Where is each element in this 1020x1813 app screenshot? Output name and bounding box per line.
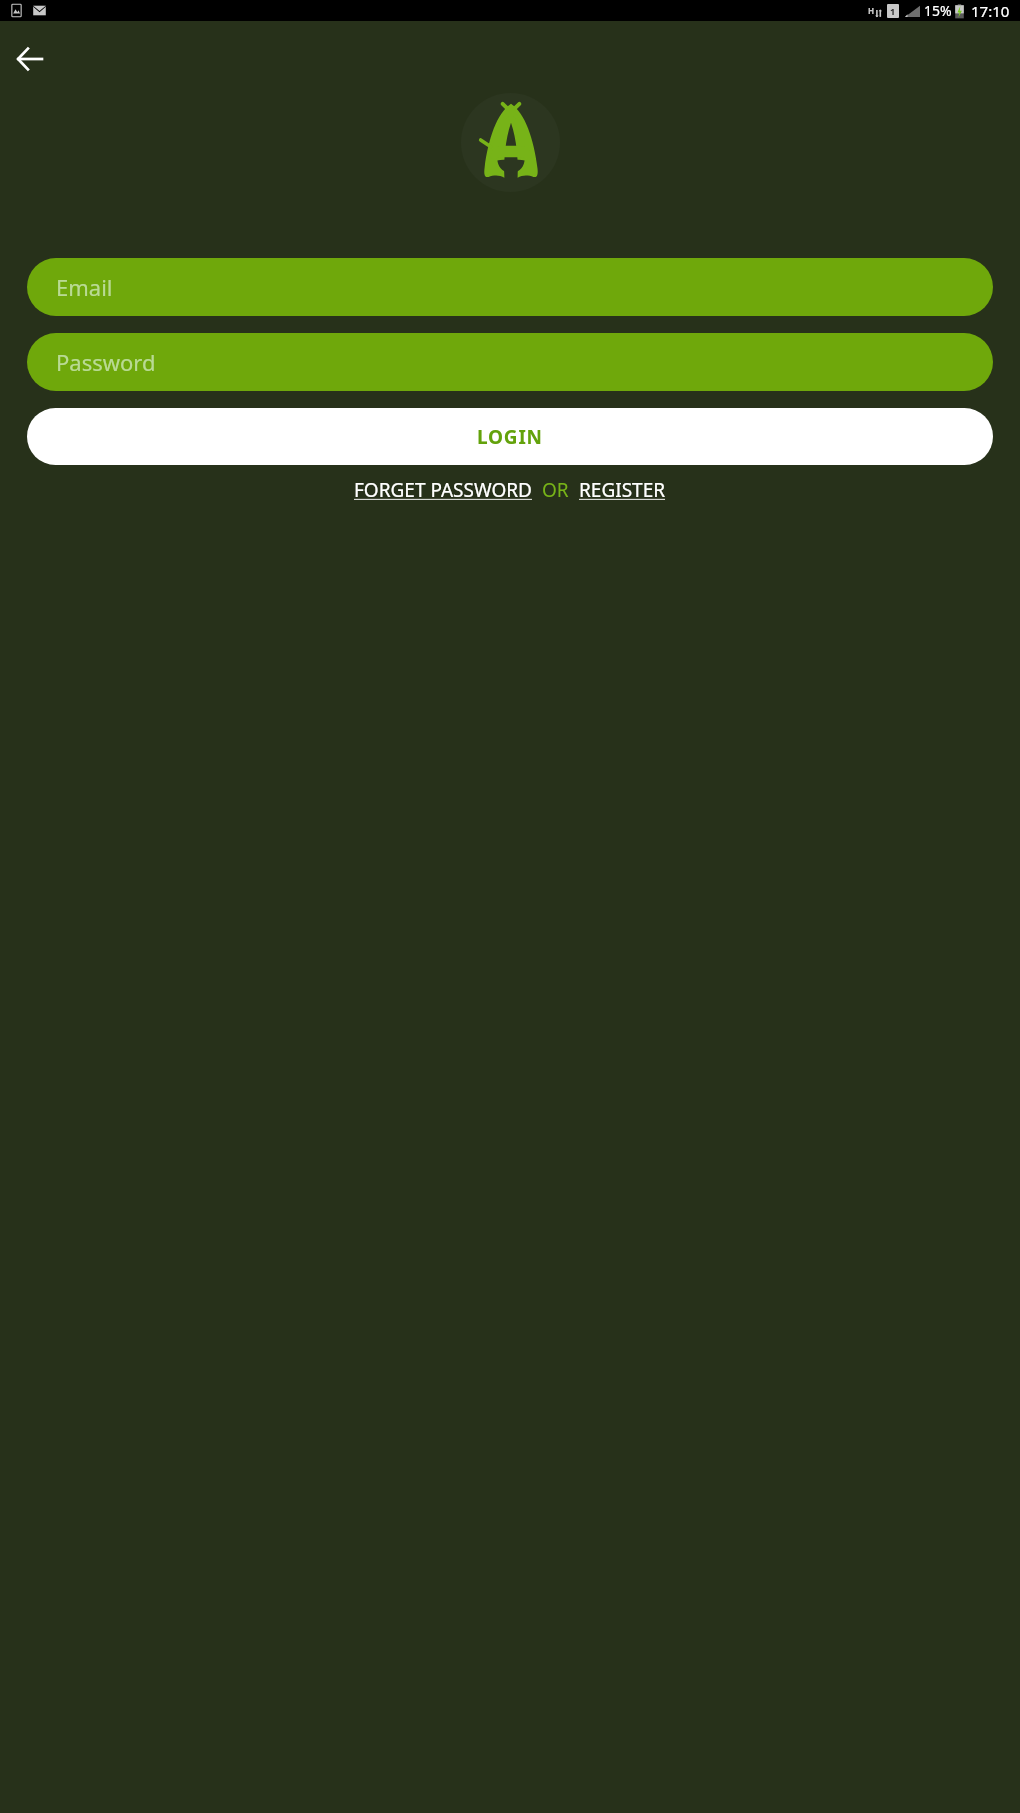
button[interactable]: Email [27, 258, 993, 316]
button[interactable]: Back [6, 35, 54, 83]
staticText: 17:10 [971, 1, 1010, 21]
staticText: Password [56, 347, 156, 377]
staticText: Email [56, 272, 113, 302]
button[interactable]: LOGIN [27, 408, 993, 465]
button[interactable]: FORGET PASSWORD [354, 477, 532, 503]
button[interactable]: REGISTER [579, 477, 666, 503]
staticText: 1 [890, 5, 896, 17]
staticText: H [868, 5, 875, 16]
button[interactable]: Password [27, 333, 993, 391]
staticText: LOGIN [477, 424, 543, 450]
staticText: 15% [924, 1, 952, 20]
staticText: OR [532, 477, 579, 503]
